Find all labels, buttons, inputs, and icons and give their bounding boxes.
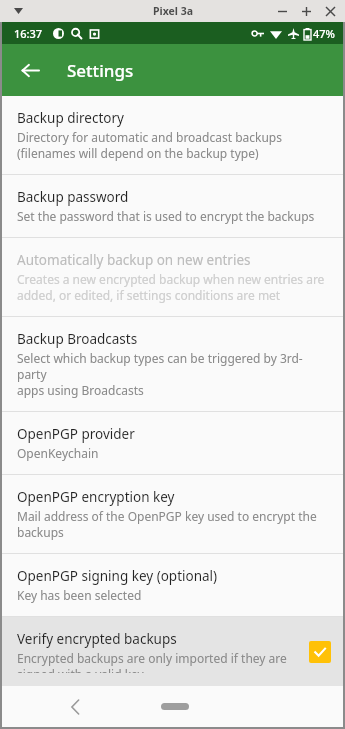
button[interactable]: Home — [161, 703, 189, 710]
staticText: Verify encrypted backups — [17, 630, 177, 648]
button[interactable]: Minimize — [275, 4, 289, 18]
staticText: 47% — [313, 26, 335, 41]
button[interactable]: OpenPGP provider — [2, 412, 343, 474]
button[interactable]: OpenPGP encryption key — [2, 475, 343, 553]
staticText: Automatically backup on new entries — [17, 251, 251, 269]
staticText: Backup password — [17, 188, 129, 206]
staticText: OpenKeychain — [17, 445, 99, 461]
button[interactable]: Automatically backup on new entries — [2, 238, 343, 316]
staticText: OpenPGP provider — [17, 425, 135, 443]
button[interactable]: Backup directory — [2, 96, 343, 174]
button[interactable]: Verify encrypted backups — [2, 617, 343, 686]
staticText: Directory for automatic and broadcast ba… — [17, 129, 282, 161]
button[interactable]: Backup password — [2, 175, 343, 237]
staticText: 16:37 — [14, 26, 43, 41]
staticText: Select which backup types can be trigger… — [17, 350, 331, 398]
staticText: Encrypted backups are only imported if t… — [17, 650, 287, 673]
button[interactable]: Backup Broadcasts — [2, 317, 343, 411]
staticText: Backup directory — [17, 109, 124, 127]
staticText: Backup Broadcasts — [17, 330, 138, 348]
staticText: OpenPGP signing key (optional) — [17, 567, 218, 585]
staticText: Creates a new encrypted backup when new … — [17, 271, 325, 303]
staticText: Settings — [67, 59, 134, 82]
button[interactable]: Maximize — [299, 4, 313, 18]
staticText: OpenPGP encryption key — [17, 488, 175, 506]
button[interactable]: OpenPGP signing key (optional) — [2, 554, 343, 616]
staticText: Mail address of the OpenPGP key used to … — [17, 508, 317, 540]
staticText: Set the password that is used to encrypt… — [17, 208, 315, 224]
button[interactable]: Verify encrypted backups checkbox — [309, 641, 331, 663]
button[interactable]: Back — [10, 50, 50, 90]
button[interactable]: Close — [323, 4, 337, 18]
button[interactable]: Menu — [10, 3, 26, 19]
button[interactable]: Back — [60, 692, 90, 722]
staticText: Pixel 3a — [153, 4, 193, 18]
staticText: Key has been selected — [17, 587, 142, 603]
